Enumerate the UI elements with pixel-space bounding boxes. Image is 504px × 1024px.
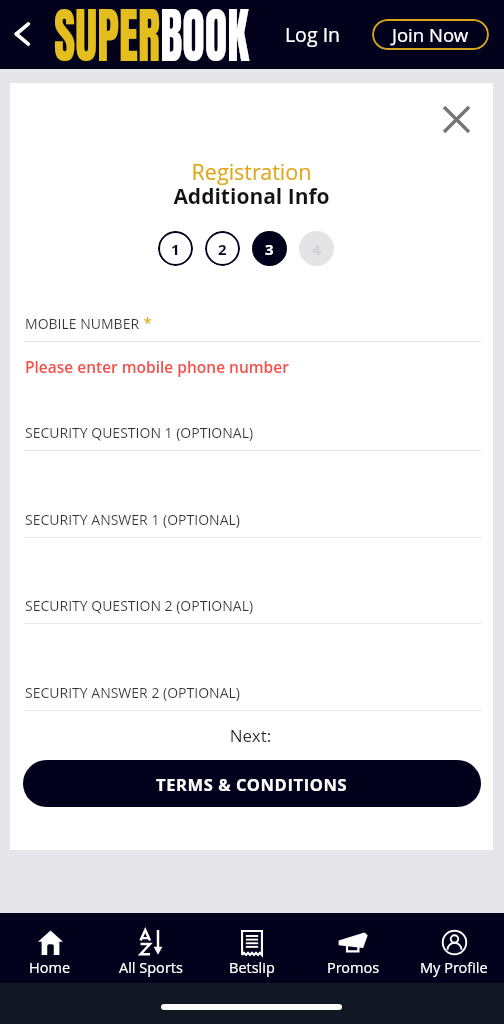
button[interactable]: Home bbox=[0, 929, 100, 978]
button[interactable]: Betslip bbox=[202, 929, 302, 978]
button[interactable]: TERMS & CONDITIONS bbox=[23, 760, 481, 807]
button[interactable]: Promos bbox=[303, 929, 403, 978]
button[interactable]: 4 bbox=[299, 231, 334, 266]
staticText: 2 bbox=[218, 239, 227, 259]
staticText: Additional Info bbox=[10, 182, 493, 211]
staticText: Join Now bbox=[392, 22, 469, 47]
staticText: Home bbox=[29, 958, 71, 978]
staticText: All Sports bbox=[119, 958, 183, 978]
staticText: SECURITY ANSWER 2 (OPTIONAL) bbox=[25, 683, 240, 702]
button[interactable]: Close bbox=[436, 99, 476, 139]
button[interactable]: My Profile bbox=[404, 929, 504, 978]
staticText: Log In bbox=[285, 21, 341, 48]
button[interactable]: 1 bbox=[158, 231, 193, 266]
staticText: 3 bbox=[265, 239, 274, 259]
staticText: 4 bbox=[312, 239, 321, 259]
staticText: TERMS & CONDITIONS bbox=[156, 773, 348, 795]
staticText: SECURITY QUESTION 1 (OPTIONAL) bbox=[25, 423, 254, 442]
staticText: Promos bbox=[327, 958, 380, 978]
button[interactable]: Log In bbox=[277, 12, 349, 57]
staticText: Please enter mobile phone number bbox=[25, 356, 289, 377]
staticText: BOOK bbox=[160, 0, 250, 80]
button[interactable]: 3 bbox=[252, 231, 287, 266]
button[interactable]: 2 bbox=[205, 231, 240, 266]
staticText: 1 bbox=[171, 239, 180, 259]
button[interactable]: Back bbox=[4, 14, 44, 54]
staticText: MOBILE NUMBER bbox=[25, 314, 140, 333]
staticText: * bbox=[140, 313, 152, 332]
staticText: SECURITY ANSWER 1 (OPTIONAL) bbox=[25, 510, 240, 529]
button[interactable]: All Sports bbox=[101, 929, 201, 978]
staticText: Betslip bbox=[229, 958, 275, 978]
staticText: SECURITY QUESTION 2 (OPTIONAL) bbox=[25, 596, 254, 615]
staticText: SUPER bbox=[54, 0, 160, 80]
button[interactable]: Join Now bbox=[372, 19, 489, 50]
staticText: Registration bbox=[10, 157, 493, 186]
staticText: Next: bbox=[9, 724, 492, 747]
staticText: My Profile bbox=[420, 958, 488, 978]
